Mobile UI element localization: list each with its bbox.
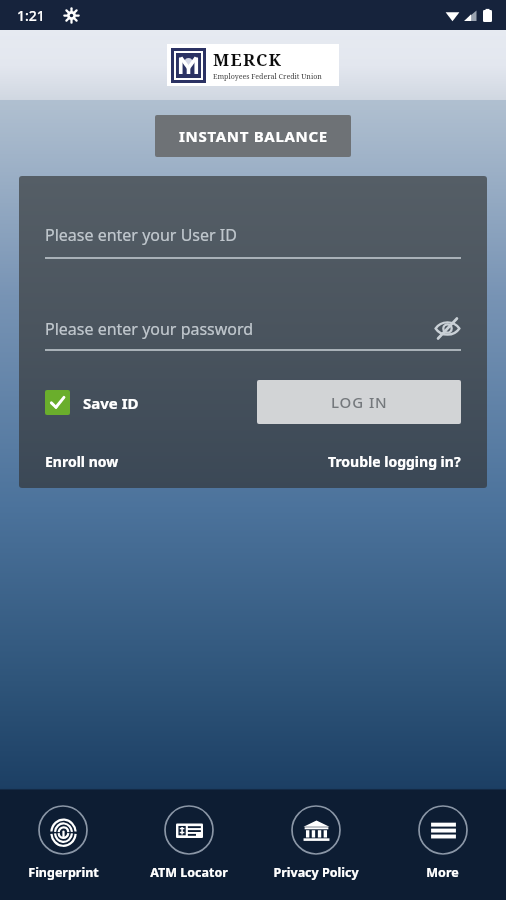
button[interactable]: Enroll now [45,452,119,471]
button[interactable]: Trouble logging in? [328,452,461,471]
staticText: INSTANT BALANCE [179,126,328,146]
button[interactable]: INSTANT BALANCE [155,115,351,157]
staticText: Trouble logging in? [328,452,461,471]
button[interactable]: Save ID [45,390,139,415]
staticText: ATM Locator [150,864,228,881]
staticText: LOG IN [331,392,388,412]
staticText: Employees Federal Credit Union [213,72,322,82]
staticText: Privacy Policy [273,864,359,881]
staticText: Please enter your password [45,318,434,340]
staticText: More [426,864,459,881]
button[interactable]: Privacy Policy [252,805,379,900]
button[interactable]: Please enter your password [45,315,461,351]
button[interactable]: Fingerprint [0,805,126,900]
staticText: MERCK [213,48,283,71]
staticText: 1:21 [17,6,45,25]
button[interactable]: Show password [434,315,461,342]
button[interactable]: Please enter your User ID [45,224,461,259]
staticText: Enroll now [45,452,119,471]
button[interactable]: More [379,805,506,900]
button[interactable]: ATM Locator [126,805,252,900]
staticText: Save ID [83,393,139,413]
staticText: Fingerprint [28,864,99,881]
button[interactable]: LOG IN [257,380,461,424]
staticText: Please enter your User ID [45,224,237,246]
